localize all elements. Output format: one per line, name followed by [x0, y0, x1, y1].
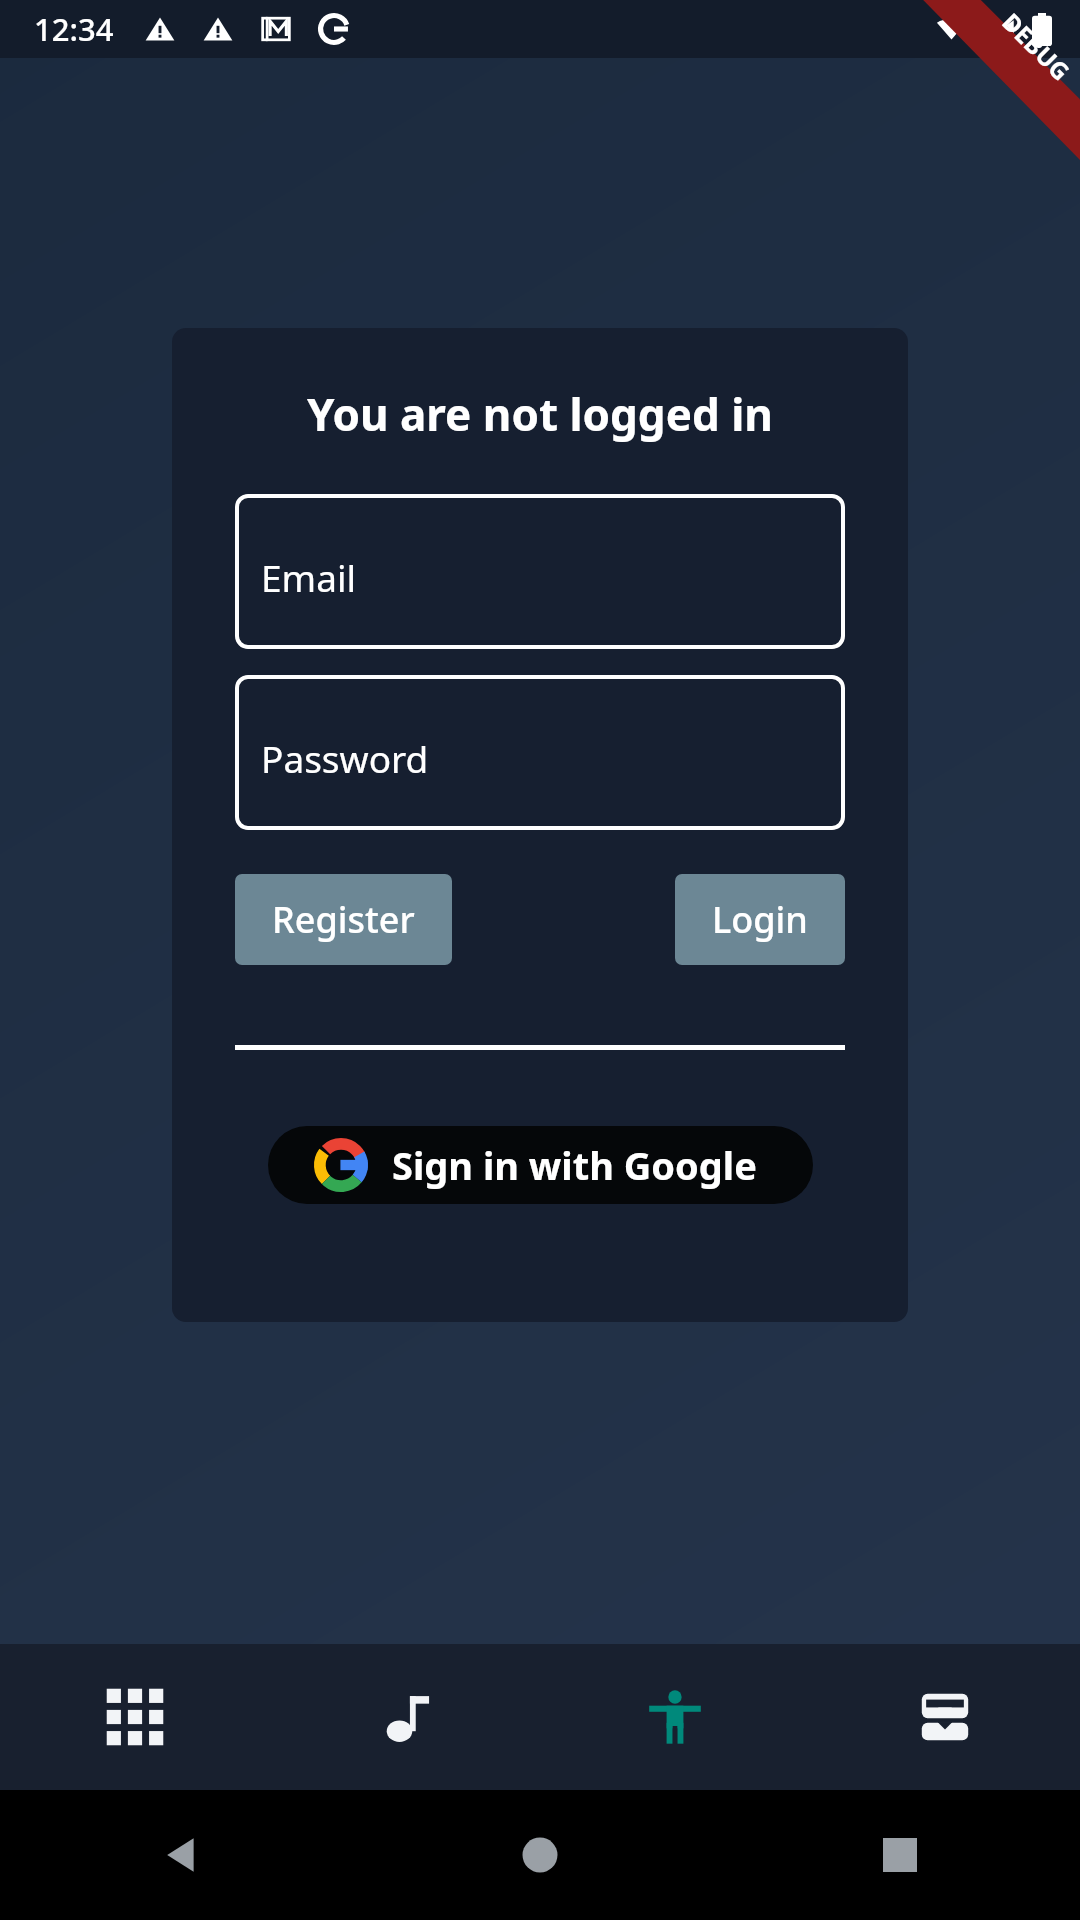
button[interactable]: Accessibility [540, 1644, 810, 1790]
staticText: You are not logged in [307, 384, 773, 444]
button[interactable]: Recent apps [720, 1790, 1080, 1920]
button[interactable]: Register [235, 874, 452, 965]
staticText: 12:34 [34, 8, 114, 50]
button[interactable]: Password [235, 675, 845, 830]
staticText: Password [261, 733, 429, 783]
staticText: Sign in with Google [392, 1139, 757, 1191]
staticText: Login [712, 895, 808, 944]
staticText: DEBUG [995, 5, 1077, 87]
button[interactable]: Music [270, 1644, 540, 1790]
button[interactable]: Sign in with Google [268, 1126, 813, 1204]
button[interactable]: Apps [0, 1644, 270, 1790]
staticText: Email [261, 552, 357, 602]
button[interactable]: Email [235, 494, 845, 649]
button[interactable]: Back [0, 1790, 360, 1920]
button[interactable]: Inbox [810, 1644, 1080, 1790]
button[interactable]: Login [675, 874, 845, 965]
staticText: Register [272, 895, 415, 944]
button[interactable]: Home [360, 1790, 720, 1920]
